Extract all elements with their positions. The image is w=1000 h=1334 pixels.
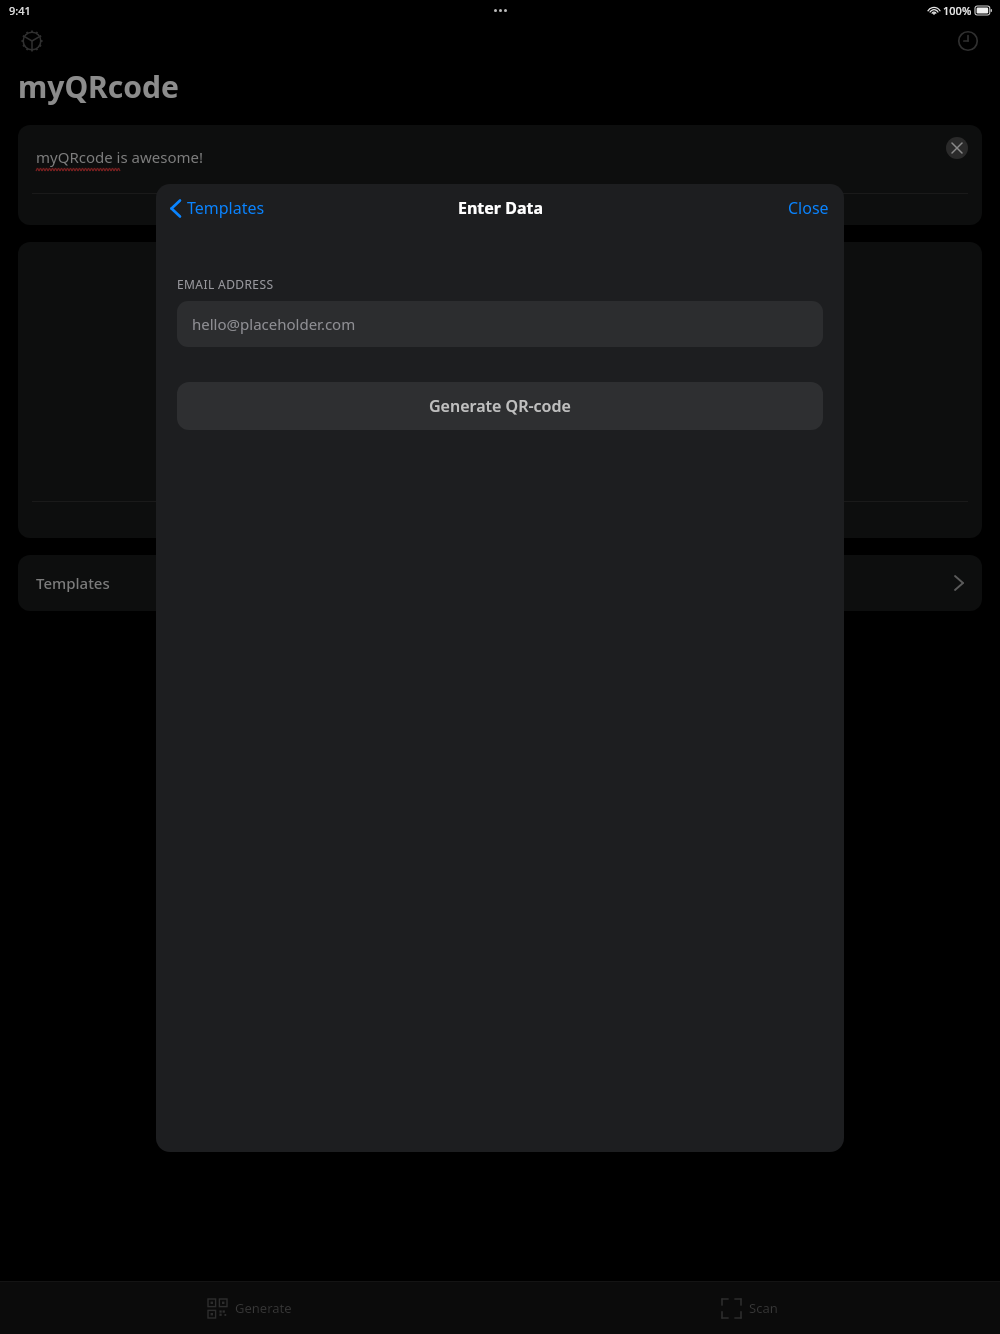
button[interactable]: Clear text (946, 137, 968, 159)
button[interactable] (18, 242, 982, 538)
staticText: 9:41 (9, 3, 31, 18)
button[interactable]: Settings (12, 21, 52, 61)
button[interactable]: Templates (156, 186, 273, 230)
button[interactable]: myQRcode is awesome! (18, 125, 982, 225)
staticText: 100% (943, 3, 972, 18)
staticText: myQRcode is awesome! (36, 147, 203, 167)
button[interactable]: Generate (0, 1282, 500, 1334)
staticText: Generate (235, 1299, 292, 1317)
button[interactable]: Templates (18, 555, 982, 611)
button[interactable]: Close (773, 186, 844, 230)
button[interactable]: History (948, 21, 988, 61)
staticText: Scan (749, 1299, 778, 1317)
staticText: Templates (187, 197, 265, 219)
staticText: Enter Data (458, 197, 543, 219)
staticText: hello@placeholder.com (192, 314, 356, 334)
staticText: Generate QR-code (429, 395, 571, 417)
button[interactable]: Generate QR-code (177, 382, 823, 430)
button[interactable]: hello@placeholder.com (177, 301, 823, 347)
staticText: Templates (36, 573, 110, 593)
staticText: myQRcode (18, 66, 179, 107)
staticText: EMAIL ADDRESS (177, 276, 274, 292)
staticText: Close (788, 197, 829, 219)
